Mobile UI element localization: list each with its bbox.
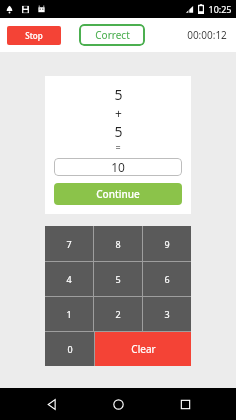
staticText: Clear: [131, 342, 156, 356]
staticText: 6: [164, 273, 170, 285]
button[interactable]: 10: [54, 158, 182, 176]
staticText: 0: [67, 343, 73, 355]
button[interactable]: 1: [45, 297, 93, 331]
button[interactable]: 3: [143, 297, 191, 331]
button[interactable]: Back: [35, 388, 67, 420]
button[interactable]: 9: [143, 226, 191, 261]
button[interactable]: 4: [45, 262, 93, 296]
staticText: 10: [111, 159, 125, 175]
button[interactable]: Correct: [79, 24, 145, 46]
button[interactable]: 0: [45, 332, 94, 366]
staticText: 5: [115, 273, 121, 285]
staticText: 9: [164, 238, 170, 250]
button[interactable]: 5: [94, 262, 142, 296]
staticText: +: [115, 105, 122, 121]
button[interactable]: Clear: [95, 332, 191, 366]
staticText: 1: [66, 308, 72, 320]
staticText: 10:25: [208, 3, 232, 15]
staticText: =: [115, 141, 121, 153]
staticText: 5: [114, 85, 123, 104]
button[interactable]: Stop: [7, 26, 61, 45]
staticText: 4: [66, 273, 72, 285]
button[interactable]: 7: [45, 226, 93, 261]
staticText: 5: [114, 122, 123, 141]
button[interactable]: Continue: [54, 183, 182, 205]
staticText: 00:00:12: [187, 28, 227, 42]
staticText: 3: [164, 308, 170, 320]
staticText: 2: [115, 308, 121, 320]
button[interactable]: 8: [94, 226, 142, 261]
staticText: 7: [66, 238, 72, 250]
staticText: Correct: [95, 28, 130, 42]
button[interactable]: 2: [94, 297, 142, 331]
staticText: 8: [115, 238, 121, 250]
button[interactable]: Home: [102, 388, 134, 420]
button[interactable]: Recents: [169, 388, 201, 420]
staticText: Continue: [96, 187, 140, 201]
staticText: Stop: [25, 30, 43, 41]
button[interactable]: 6: [143, 262, 191, 296]
